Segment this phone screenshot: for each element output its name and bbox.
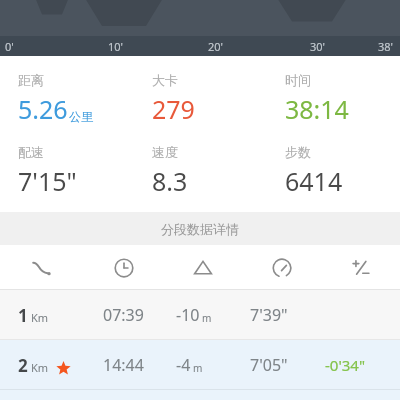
button[interactable]: 2 <box>0 340 400 390</box>
staticText: m <box>193 361 203 375</box>
staticText: 速度 <box>152 144 178 160</box>
staticText: 10' <box>108 39 124 54</box>
staticText: -0'34" <box>325 355 366 375</box>
staticText: 279 <box>152 92 195 126</box>
button[interactable]: Difference <box>321 245 400 290</box>
staticText: 20' <box>208 39 224 54</box>
button[interactable]: 分段数据详情 <box>0 212 400 245</box>
staticText: 配速 <box>18 144 44 160</box>
staticText: Km <box>31 310 49 325</box>
staticText: 距离 <box>18 72 44 88</box>
staticText: m <box>202 311 212 325</box>
staticText: 2 <box>18 354 28 377</box>
button[interactable]: 1 <box>0 290 400 340</box>
staticText: 7'05" <box>250 354 288 376</box>
staticText: 大卡 <box>152 72 178 88</box>
button[interactable]: Pace <box>242 245 321 290</box>
staticText: 38' <box>378 39 394 54</box>
staticText: 6414 <box>285 164 343 198</box>
staticText: Km <box>31 360 49 375</box>
staticText: 14:44 <box>103 354 144 376</box>
staticText: 8.3 <box>152 164 188 198</box>
staticText: 38:14 <box>285 92 349 126</box>
staticText: 7'15" <box>18 164 77 198</box>
staticText: 07:39 <box>103 304 144 326</box>
staticText: 步数 <box>285 144 311 160</box>
staticText: 时间 <box>285 72 311 88</box>
staticText: -10 <box>176 304 200 326</box>
button[interactable]: Route <box>0 245 84 290</box>
staticText: -4 <box>176 354 191 376</box>
staticText: 30' <box>310 39 326 54</box>
button[interactable]: Duration <box>84 245 163 290</box>
button[interactable]: Elevation <box>163 245 242 290</box>
staticText: 公里 <box>69 109 93 124</box>
staticText: 分段数据详情 <box>161 221 239 237</box>
staticText: 7'39" <box>250 304 288 326</box>
staticText: 0' <box>5 39 14 54</box>
staticText: 5.26 <box>18 92 68 126</box>
staticText: 1 <box>18 304 28 327</box>
